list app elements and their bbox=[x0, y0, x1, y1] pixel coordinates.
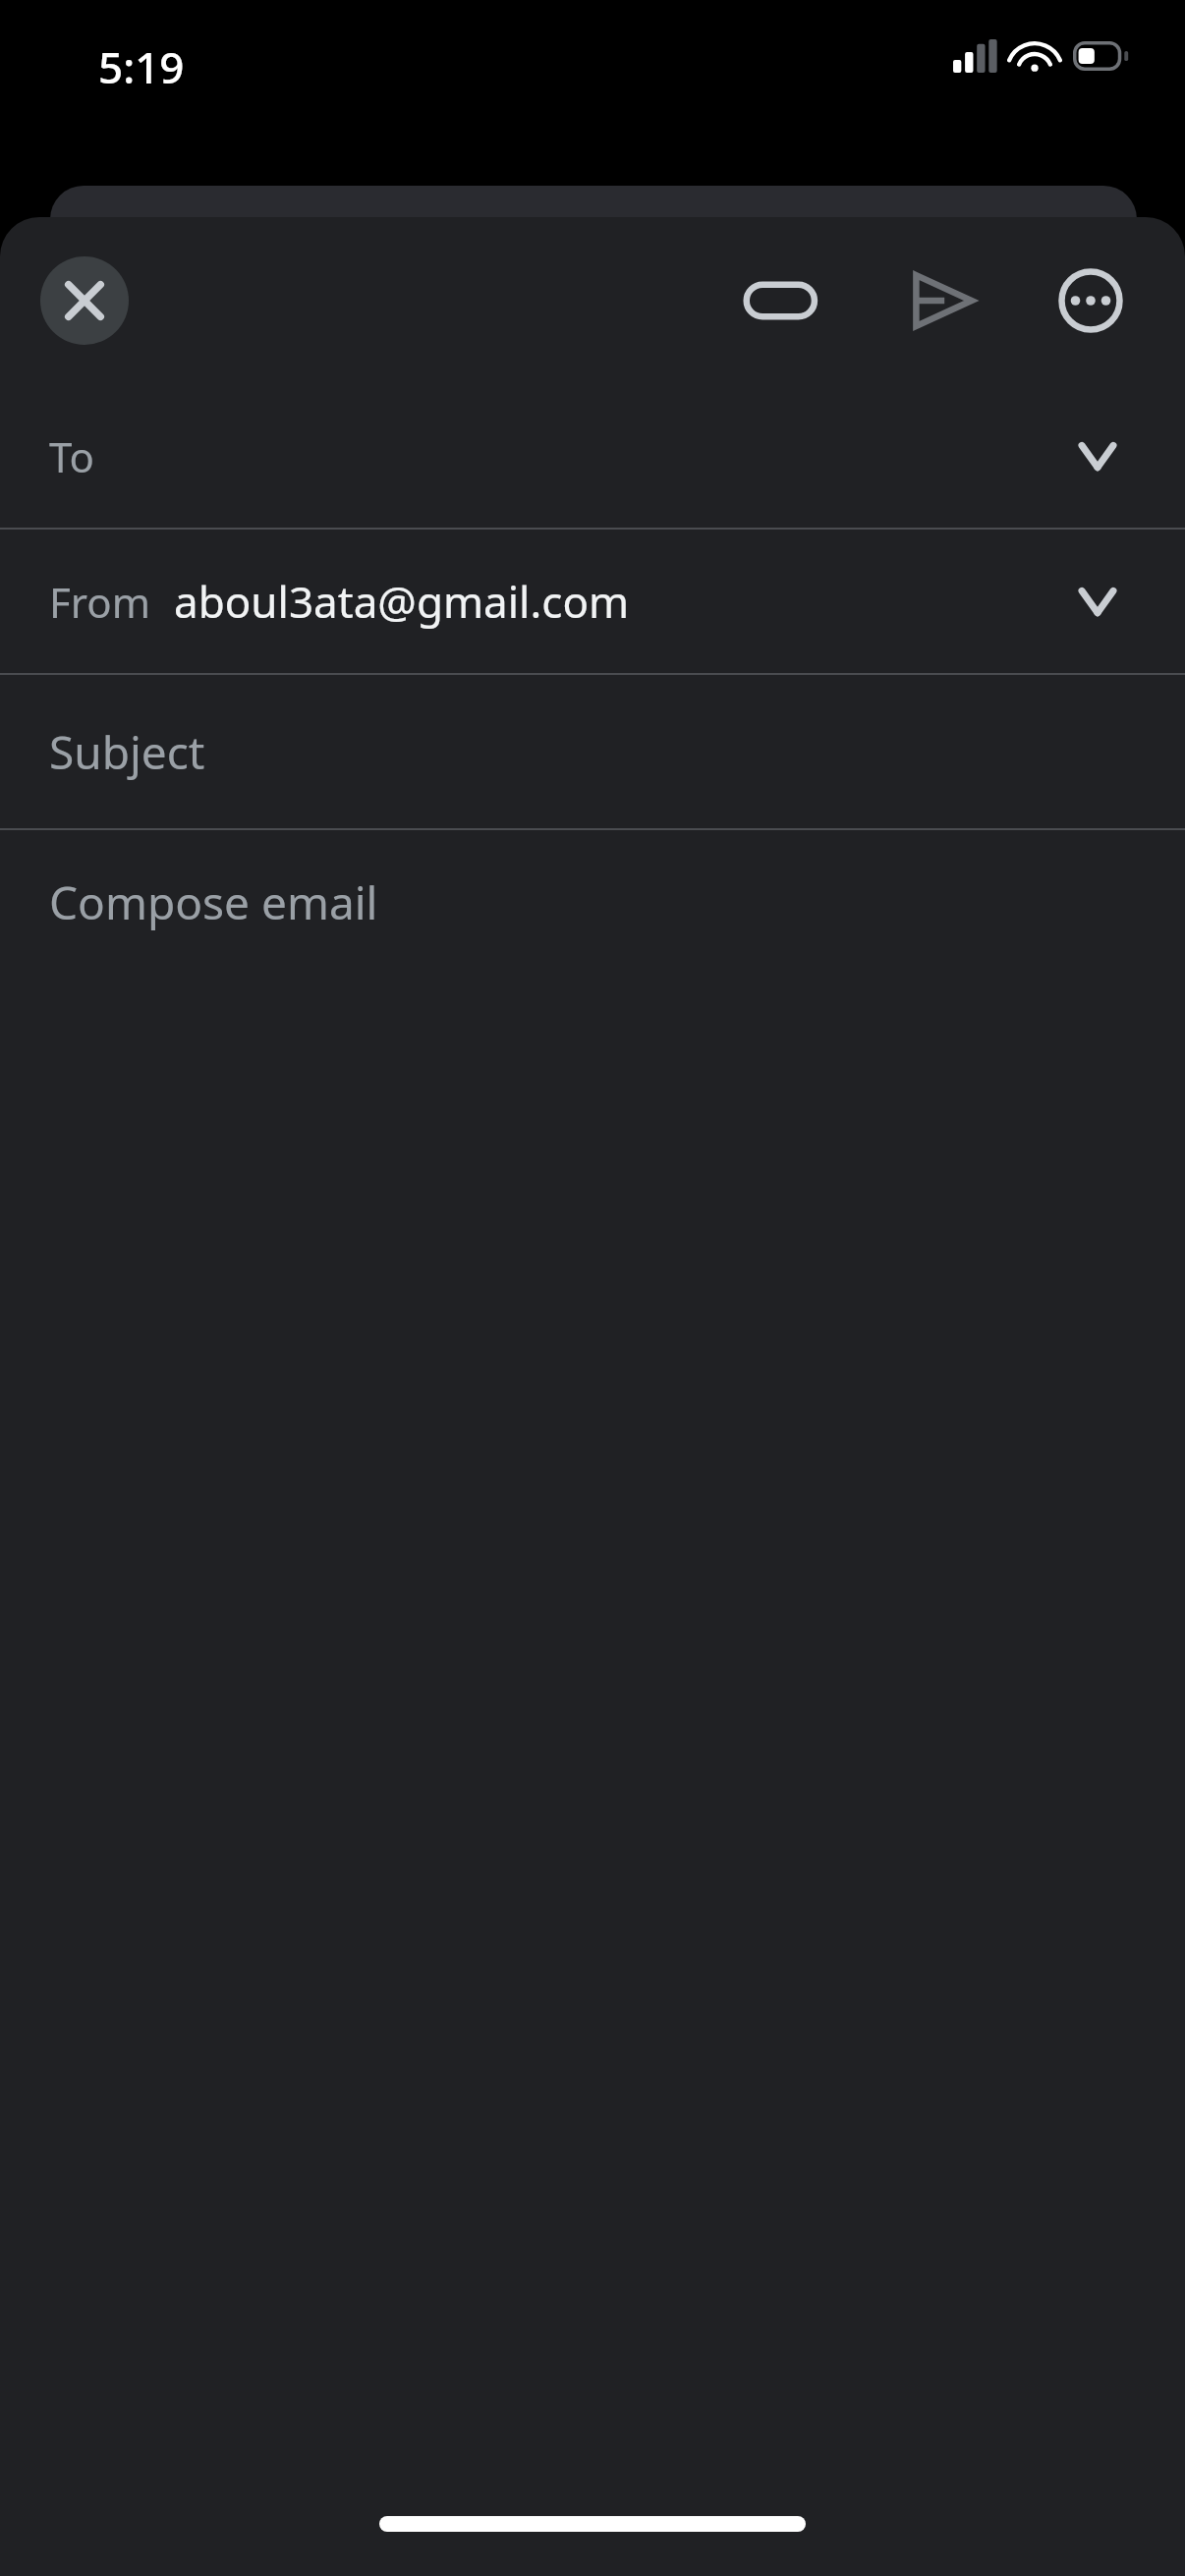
staticText: 5:19 bbox=[98, 37, 185, 96]
staticText: aboul3ata@gmail.com bbox=[174, 572, 630, 631]
staticText: To bbox=[49, 428, 94, 484]
button[interactable]: Send bbox=[896, 253, 990, 348]
button[interactable]: Expand recipients bbox=[1053, 412, 1142, 500]
button[interactable]: Change sender bbox=[1053, 557, 1142, 645]
button[interactable]: To bbox=[0, 384, 1185, 528]
button[interactable]: More options bbox=[1044, 253, 1138, 348]
staticText: Subject bbox=[49, 721, 205, 783]
staticText: Compose email bbox=[49, 871, 378, 933]
button[interactable]: Compose email bbox=[0, 830, 1185, 2488]
button[interactable]: Close bbox=[40, 256, 129, 345]
staticText: From bbox=[49, 574, 150, 630]
button[interactable]: Attach file bbox=[733, 253, 827, 348]
button[interactable]: Subject bbox=[0, 675, 1185, 828]
button[interactable]: From bbox=[0, 530, 1185, 673]
